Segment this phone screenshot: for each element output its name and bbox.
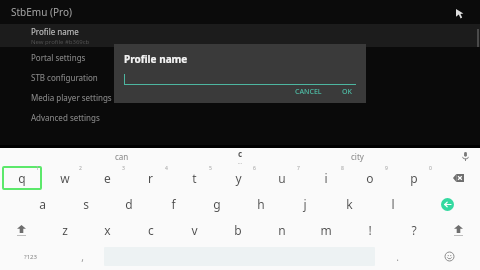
button[interactable]: d bbox=[107, 191, 151, 217]
button[interactable]: , bbox=[60, 243, 104, 270]
button[interactable]: t bbox=[172, 165, 216, 191]
staticText: ... bbox=[238, 159, 243, 165]
staticText: 6 bbox=[253, 165, 256, 172]
staticText: v bbox=[191, 222, 198, 238]
staticText: j bbox=[303, 196, 307, 212]
staticText: ! bbox=[368, 222, 372, 238]
staticText: 3 bbox=[122, 165, 125, 172]
button[interactable]: Profile name bbox=[0, 24, 480, 47]
button[interactable]: w bbox=[43, 165, 86, 191]
staticText: x bbox=[104, 222, 111, 238]
button[interactable]: l bbox=[371, 191, 415, 217]
staticText: d bbox=[125, 196, 133, 212]
staticText: k bbox=[346, 196, 353, 212]
staticText: 9 bbox=[385, 165, 388, 172]
staticText: r bbox=[148, 170, 153, 186]
button[interactable]: o bbox=[348, 165, 392, 191]
staticText: 5 bbox=[209, 165, 212, 172]
button[interactable]: Emoji bbox=[419, 243, 480, 270]
staticText: ? bbox=[411, 222, 417, 238]
staticText: Portal settings bbox=[31, 52, 86, 63]
staticText: OK bbox=[342, 87, 352, 96]
staticText: y bbox=[235, 170, 242, 186]
button[interactable]: z bbox=[43, 217, 86, 243]
button[interactable]: ?123 bbox=[0, 243, 60, 270]
button[interactable]: Portal settings bbox=[0, 47, 480, 67]
button[interactable]: g bbox=[195, 191, 239, 217]
button[interactable]: b bbox=[216, 217, 260, 243]
button[interactable]: CANCEL bbox=[289, 85, 328, 98]
button[interactable]: q bbox=[0, 165, 43, 191]
staticText: New profile #b369cb bbox=[31, 38, 90, 46]
button[interactable]: y bbox=[216, 165, 260, 191]
button[interactable]: u bbox=[260, 165, 304, 191]
staticText: c bbox=[148, 222, 154, 238]
staticText: 0 bbox=[429, 165, 432, 172]
staticText: STB configuration bbox=[31, 72, 98, 83]
staticText: h bbox=[257, 196, 265, 212]
staticText: Profile name bbox=[124, 52, 188, 66]
button[interactable]: h bbox=[239, 191, 283, 217]
button[interactable]: f bbox=[151, 191, 195, 217]
button[interactable]: a bbox=[21, 191, 64, 217]
staticText: 2 bbox=[79, 165, 82, 172]
staticText: z bbox=[62, 222, 68, 238]
staticText: f bbox=[171, 196, 176, 212]
staticText: a bbox=[39, 196, 46, 212]
staticText: Profile name bbox=[31, 26, 79, 37]
staticText: t bbox=[192, 170, 197, 186]
button[interactable]: Backspace bbox=[436, 165, 480, 191]
other: Voice input bbox=[461, 152, 470, 161]
staticText: Media player settings bbox=[31, 92, 112, 103]
button[interactable]: ? bbox=[392, 217, 436, 243]
staticText: . bbox=[396, 250, 399, 264]
staticText: 8 bbox=[341, 165, 344, 172]
staticText: p bbox=[410, 170, 418, 186]
button[interactable]: OK bbox=[336, 85, 358, 98]
button[interactable]: k bbox=[327, 191, 371, 217]
button[interactable]: r bbox=[129, 165, 172, 191]
staticText: ?123 bbox=[24, 253, 37, 261]
staticText: i bbox=[324, 170, 328, 186]
staticText: g bbox=[213, 196, 221, 212]
button[interactable]: i bbox=[304, 165, 348, 191]
button[interactable]: x bbox=[86, 217, 129, 243]
staticText: city bbox=[351, 151, 364, 162]
staticText: m bbox=[320, 222, 332, 238]
staticText: 7 bbox=[297, 165, 300, 172]
button[interactable]: STB configuration bbox=[0, 67, 480, 87]
staticText: s bbox=[83, 196, 89, 212]
staticText: b bbox=[234, 222, 242, 238]
button[interactable]: n bbox=[260, 217, 304, 243]
button[interactable]: ! bbox=[348, 217, 392, 243]
staticText: e bbox=[104, 170, 111, 186]
staticText: 1 bbox=[36, 165, 39, 172]
button[interactable]: Shift bbox=[436, 217, 480, 243]
staticText: q bbox=[18, 170, 26, 186]
button[interactable]: s bbox=[64, 191, 107, 217]
button[interactable]: v bbox=[172, 217, 216, 243]
button[interactable]: e bbox=[86, 165, 129, 191]
staticText: , bbox=[81, 250, 84, 264]
staticText: u bbox=[278, 170, 286, 186]
button[interactable]: c bbox=[129, 217, 172, 243]
staticText: can bbox=[115, 151, 129, 162]
staticText: Advanced settings bbox=[31, 112, 100, 123]
staticText: l bbox=[391, 196, 395, 212]
button[interactable]: j bbox=[283, 191, 327, 217]
button[interactable]: Shift bbox=[0, 217, 43, 243]
button[interactable]: m bbox=[304, 217, 348, 243]
staticText: 4 bbox=[165, 165, 168, 172]
button[interactable]: p bbox=[392, 165, 436, 191]
staticText: StbEmu (Pro) bbox=[11, 5, 72, 19]
staticText: o bbox=[366, 170, 374, 186]
staticText: c bbox=[238, 148, 243, 159]
button[interactable]: Advanced settings bbox=[0, 107, 480, 127]
staticText: CANCEL bbox=[295, 87, 322, 96]
button[interactable]: Media player settings bbox=[0, 87, 480, 107]
staticText: n bbox=[278, 222, 286, 238]
button[interactable]: Enter bbox=[415, 191, 480, 217]
staticText: w bbox=[60, 170, 70, 186]
